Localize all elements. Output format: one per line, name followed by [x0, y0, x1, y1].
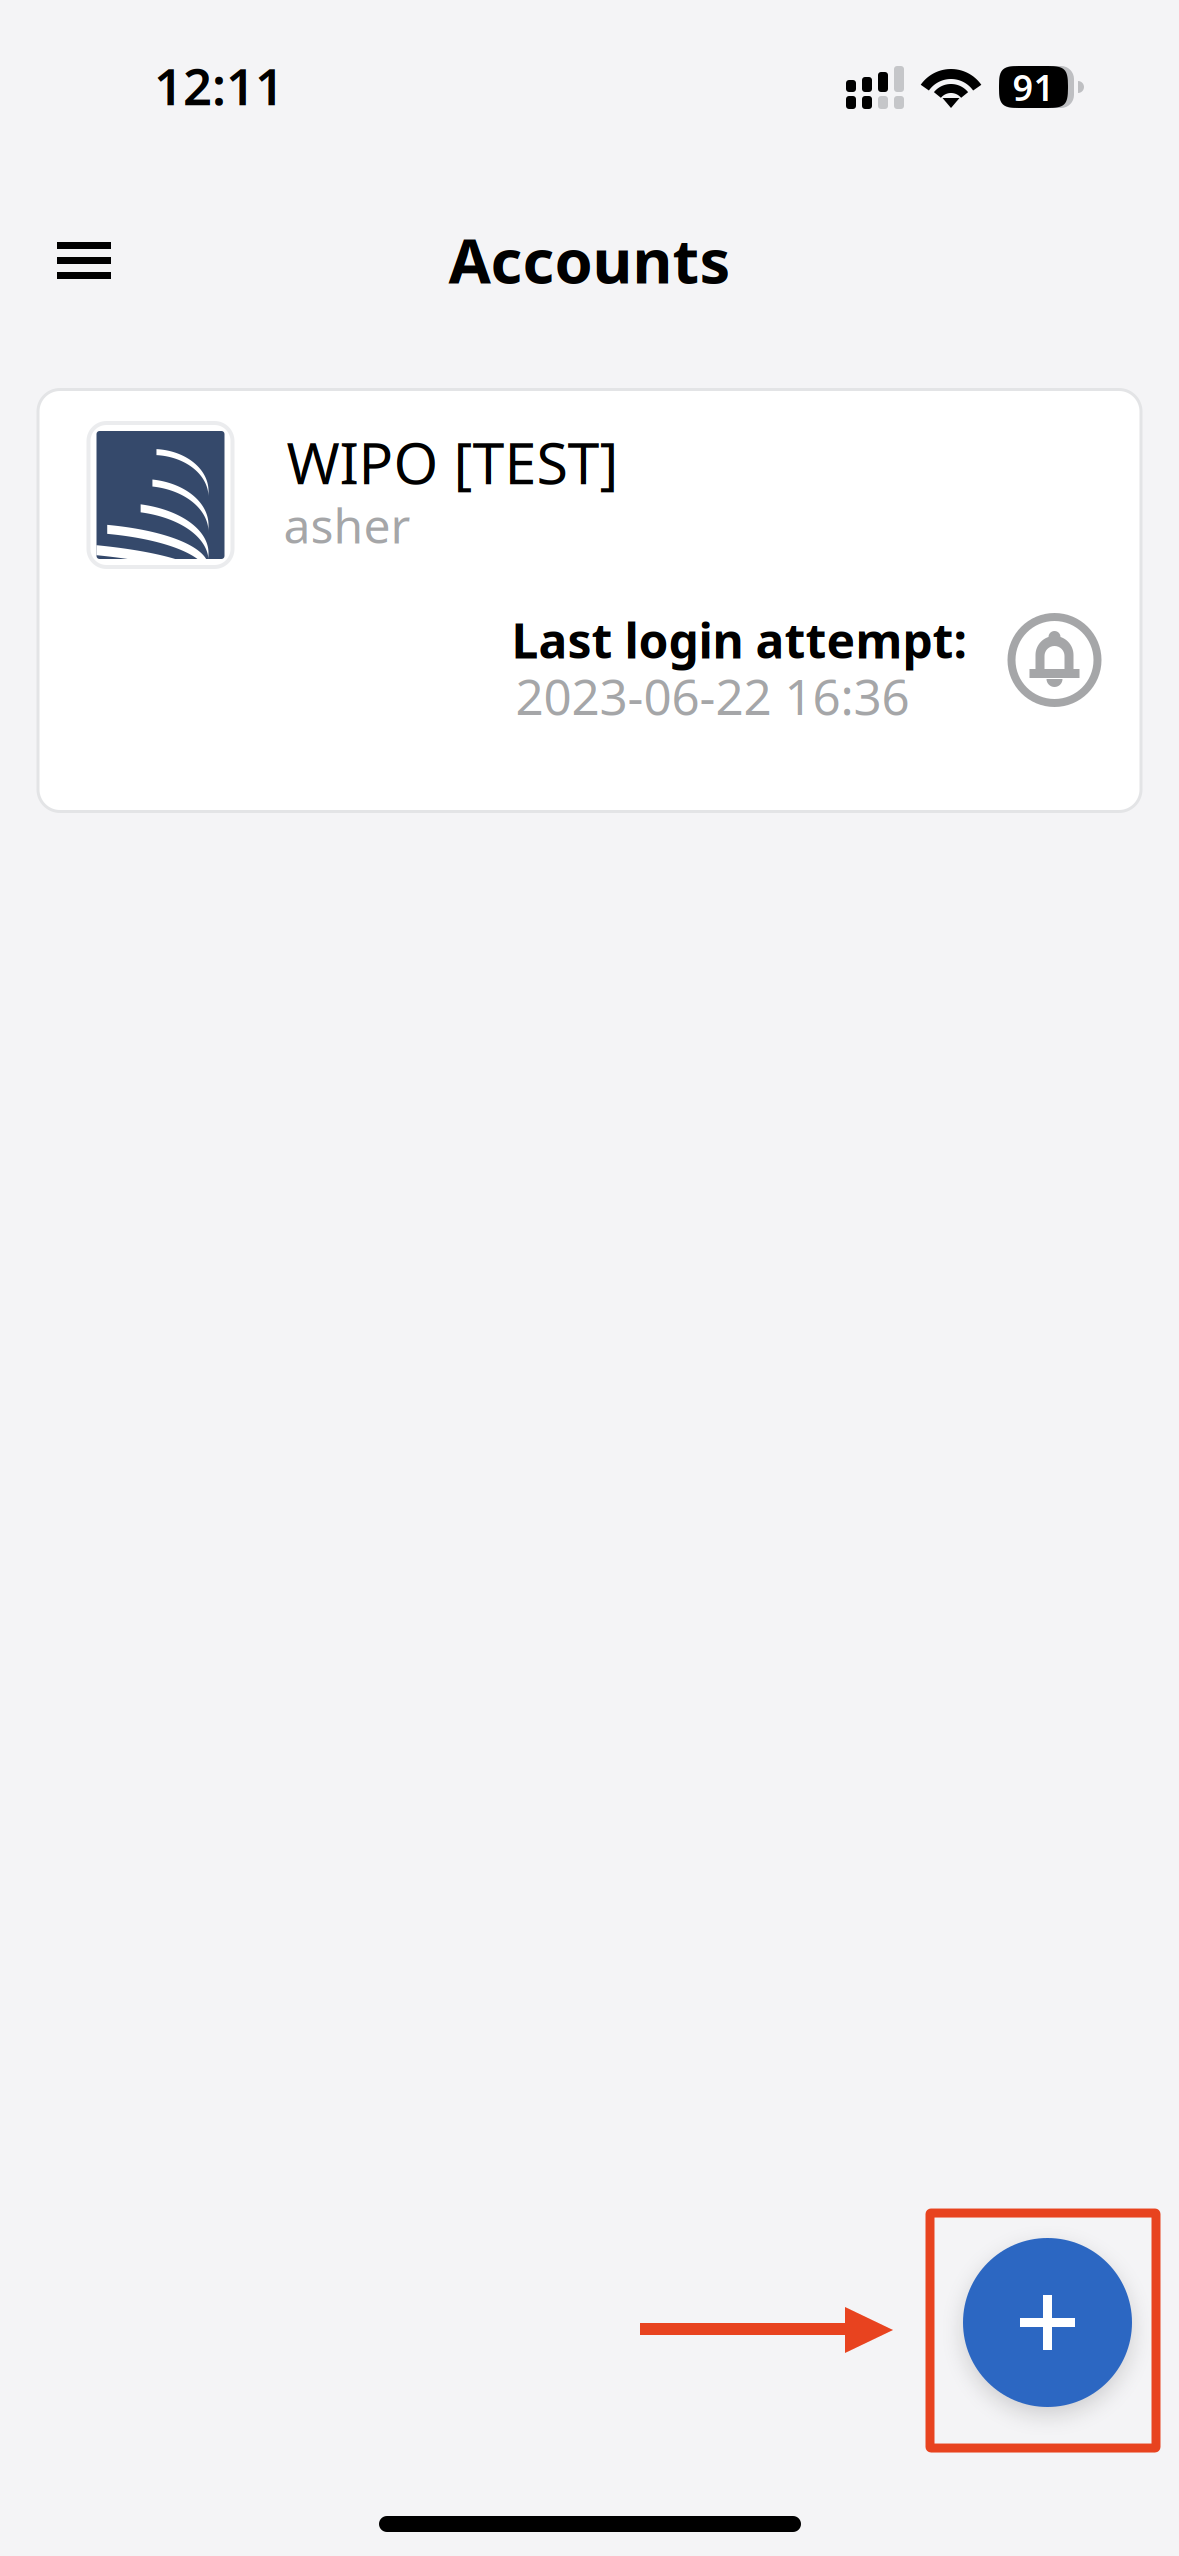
- staticText: 2023-06-22 16:36: [515, 663, 909, 728]
- staticText: 91: [1012, 63, 1054, 111]
- staticText: 12:11: [154, 52, 284, 119]
- staticText: WIPO [TEST]: [286, 424, 618, 500]
- button[interactable]: Notifications: [1007, 613, 1101, 707]
- button[interactable]: WIPO [TEST]: [0, 0, 1106, 426]
- button[interactable]: Add account: [0, 0, 169, 169]
- staticText: asher: [283, 493, 410, 557]
- staticText: Last login attempt:: [511, 608, 966, 672]
- staticText: Accounts: [448, 219, 730, 300]
